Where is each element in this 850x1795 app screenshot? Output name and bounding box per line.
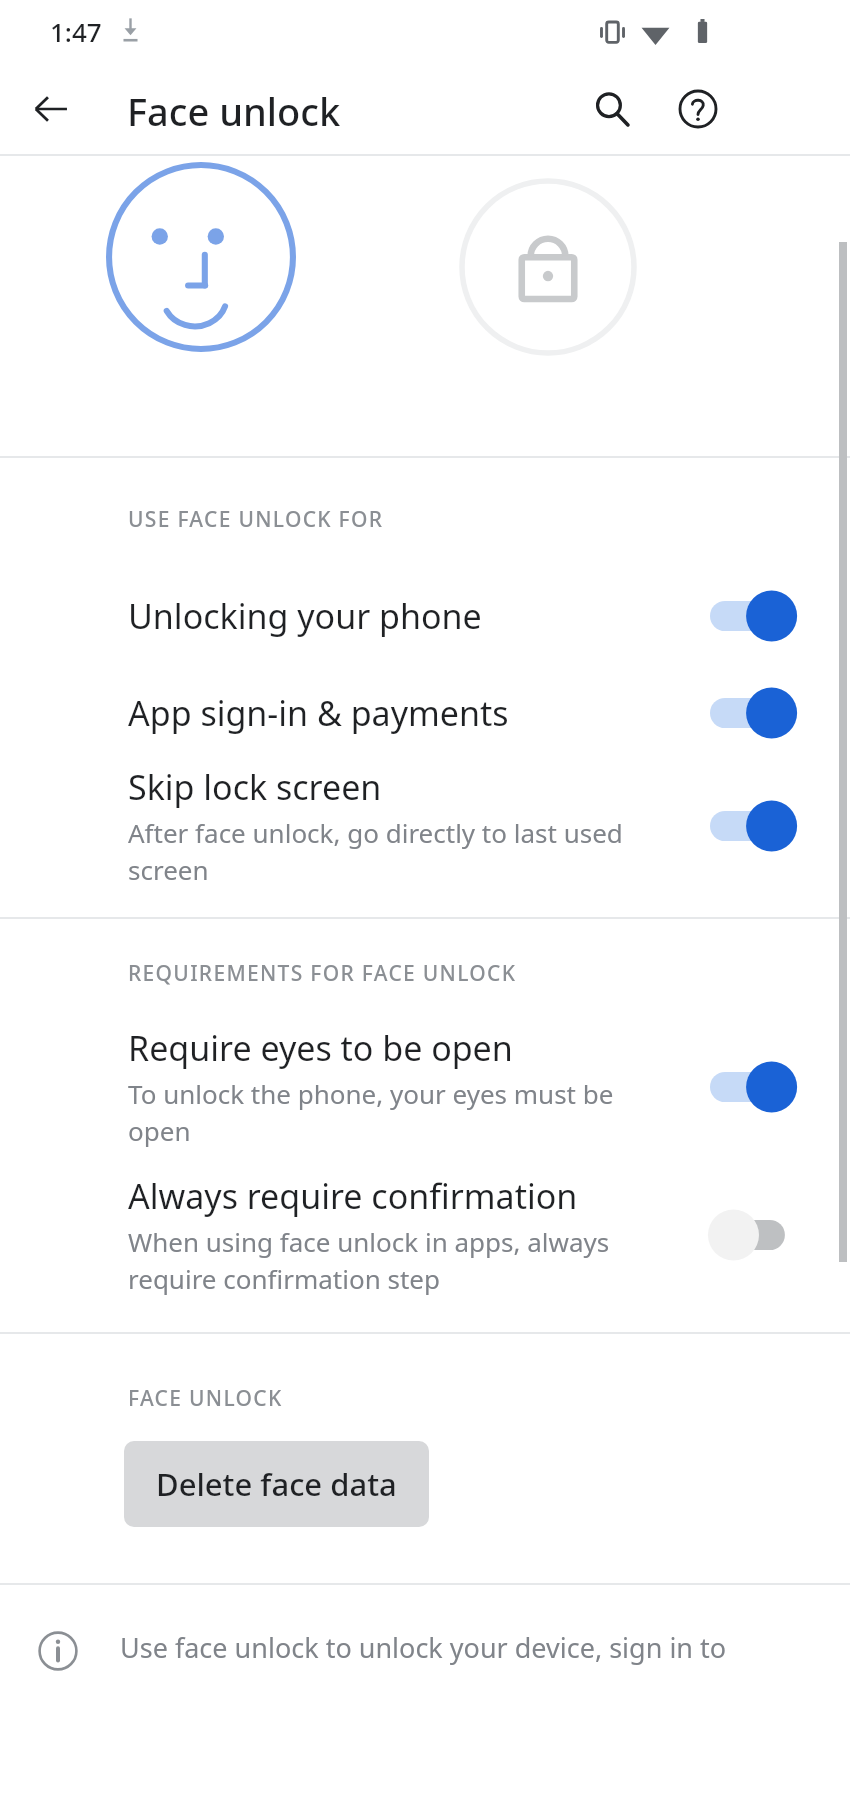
staticText: Require eyes to be open bbox=[128, 1025, 513, 1071]
button[interactable]: Require eyes to be open bbox=[0, 1020, 850, 1154]
staticText: To unlock the phone, your eyes must be o… bbox=[128, 1076, 614, 1149]
button[interactable]: App sign-in & payments bbox=[0, 664, 850, 761]
button[interactable]: Require eyes to be open bbox=[710, 1049, 814, 1125]
staticText: USE FACE UNLOCK FOR bbox=[128, 505, 384, 534]
button[interactable]: Always require confirmation bbox=[710, 1197, 814, 1273]
staticText: Unlocking your phone bbox=[128, 593, 482, 639]
button[interactable]: Search bbox=[575, 72, 649, 146]
staticText: Face unlock bbox=[127, 85, 341, 137]
staticText: REQUIREMENTS FOR FACE UNLOCK bbox=[128, 959, 517, 988]
staticText: Use face unlock to unlock your device, s… bbox=[120, 1629, 727, 1666]
staticText: App sign-in & payments bbox=[128, 690, 509, 736]
staticText: FACE UNLOCK bbox=[128, 1384, 283, 1413]
staticText: Skip lock screen bbox=[128, 764, 382, 810]
staticText: Delete face data bbox=[156, 1463, 397, 1505]
staticText: Always require confirmation bbox=[128, 1173, 578, 1219]
button[interactable]: Unlocking your phone bbox=[710, 578, 814, 654]
button[interactable]: Skip lock screen bbox=[710, 788, 814, 864]
staticText: After face unlock, go directly to last u… bbox=[128, 815, 623, 888]
button[interactable]: Skip lock screen bbox=[0, 761, 850, 891]
button[interactable]: App sign-in & payments bbox=[710, 675, 814, 751]
button[interactable]: Delete face data bbox=[124, 1441, 429, 1527]
staticText: 1:47 bbox=[50, 14, 102, 49]
button[interactable]: Help bbox=[661, 72, 735, 146]
button[interactable]: Always require confirmation bbox=[0, 1168, 850, 1302]
staticText: When using face unlock in apps, always r… bbox=[128, 1224, 610, 1297]
button[interactable]: Back bbox=[17, 75, 85, 143]
button[interactable]: Unlocking your phone bbox=[0, 568, 850, 664]
